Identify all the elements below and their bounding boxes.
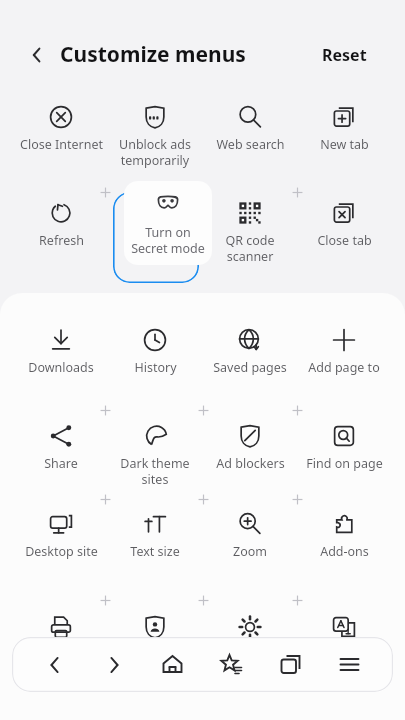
button[interactable]: Web search [203,104,297,153]
button[interactable]: Turn on Secret mode [124,181,212,265]
button[interactable]: QR code scanner [203,200,297,264]
staticText: Web search [216,136,285,153]
button[interactable]: Unblock ads temporarily [108,104,202,168]
button[interactable]: Dark theme sites [108,423,202,487]
button[interactable]: Settings [235,612,265,642]
staticText: Dark theme sites [120,455,190,487]
staticText: Text size [130,543,180,560]
button[interactable]: Tabs [261,637,320,692]
button[interactable]: Ad blockers [203,423,297,472]
staticText: Turn on Secret mode [118,232,192,264]
staticText: Saved pages [213,359,287,376]
staticText: Unblock ads temporarily [119,136,191,168]
staticText: Reset [322,44,367,66]
button[interactable]: Text size [108,511,202,560]
button[interactable]: Refresh [14,200,108,249]
button[interactable]: Downloads [14,327,108,376]
staticText: Zoom [233,543,267,560]
button[interactable]: Back [20,38,54,72]
button[interactable]: History [108,327,202,376]
button[interactable]: Close tab [297,200,391,249]
button[interactable]: Add-ons [297,511,391,560]
staticText: Share [44,455,78,472]
button[interactable]: Close Internet [14,104,108,153]
button[interactable]: Home [143,637,202,692]
button[interactable]: Saved pages [203,327,297,376]
staticText: Refresh [39,232,84,249]
button[interactable]: Menu [320,637,379,692]
button[interactable]: Translate [329,612,359,642]
staticText: Add-ons [320,543,369,560]
staticText: Customize menus [60,40,246,69]
staticText: Find on page [306,455,383,472]
staticText: QR code scanner [225,232,275,264]
button[interactable]: New tab [297,104,391,153]
button[interactable]: Desktop site [14,511,108,560]
staticText: Downloads [28,359,94,376]
staticText: Close tab [317,232,372,249]
button[interactable]: Print [46,612,76,642]
button[interactable]: Turn on Secret mode [108,200,202,264]
staticText: Ad blockers [216,455,285,472]
staticText: Add page to [308,359,380,376]
button[interactable]: Share [14,423,108,472]
button[interactable]: Add page to [297,327,391,376]
button[interactable]: Privacy [140,612,170,642]
staticText: Turn on Secret mode [131,224,205,256]
button[interactable]: Back [26,637,84,692]
button[interactable]: Reset [322,44,367,66]
button[interactable]: Zoom [203,511,297,560]
button[interactable]: Forward [84,637,143,692]
staticText: History [134,359,177,376]
button[interactable]: Find on page [297,423,391,472]
staticText: Close Internet [20,136,103,153]
staticText: New tab [320,136,369,153]
button[interactable]: Bookmarks [202,637,261,692]
staticText: Desktop site [25,543,98,560]
